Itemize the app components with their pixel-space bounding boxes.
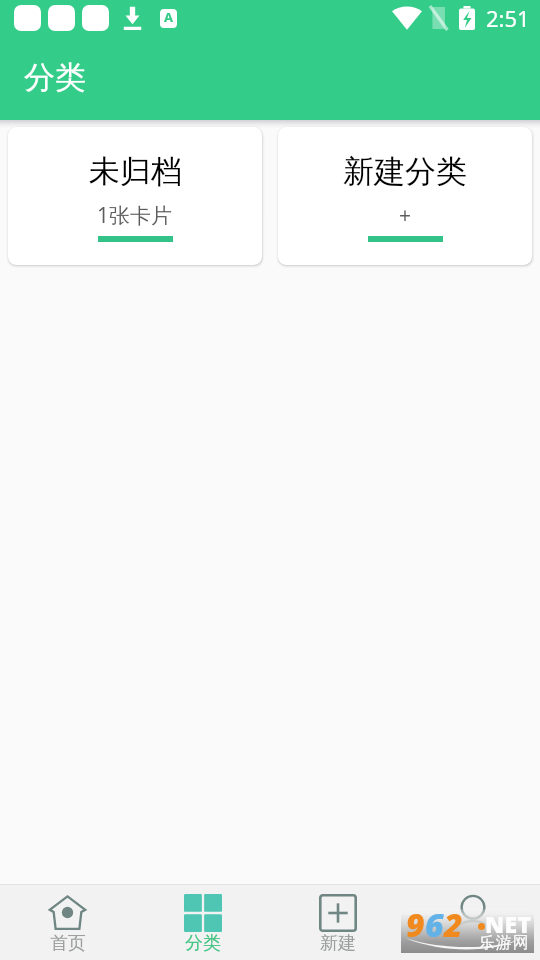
button[interactable]: 未归档 bbox=[8, 127, 262, 265]
other: Wi-Fi bbox=[392, 6, 422, 30]
staticText: 6 bbox=[425, 903, 444, 947]
staticText: 分类 bbox=[24, 58, 86, 97]
staticText: 1张卡片 bbox=[97, 201, 173, 230]
staticText: 乐游网 bbox=[478, 933, 529, 953]
button[interactable]: 分类 bbox=[135, 885, 270, 960]
staticText: 分类 bbox=[185, 932, 221, 955]
staticText: + bbox=[399, 201, 412, 230]
other: Battery charging bbox=[459, 6, 475, 30]
staticText: NET bbox=[485, 908, 532, 939]
button[interactable]: 新建 bbox=[270, 885, 405, 960]
button[interactable]: 我的 bbox=[405, 885, 540, 960]
staticText: 2 bbox=[444, 903, 463, 947]
staticText: 新建 bbox=[320, 932, 356, 955]
staticText: 首页 bbox=[50, 932, 86, 955]
button[interactable]: 首页 bbox=[0, 885, 135, 960]
staticText: 新建分类 bbox=[343, 152, 467, 191]
staticText: A bbox=[164, 9, 173, 26]
other: Downloads bbox=[123, 3, 142, 28]
button[interactable]: 新建分类 bbox=[278, 127, 532, 265]
staticText: 2:51 bbox=[486, 3, 530, 33]
staticText: 9 bbox=[406, 903, 425, 947]
other: No SIM bbox=[429, 6, 448, 30]
staticText: 未归档 bbox=[89, 152, 182, 191]
staticText: 我的 bbox=[455, 932, 491, 955]
